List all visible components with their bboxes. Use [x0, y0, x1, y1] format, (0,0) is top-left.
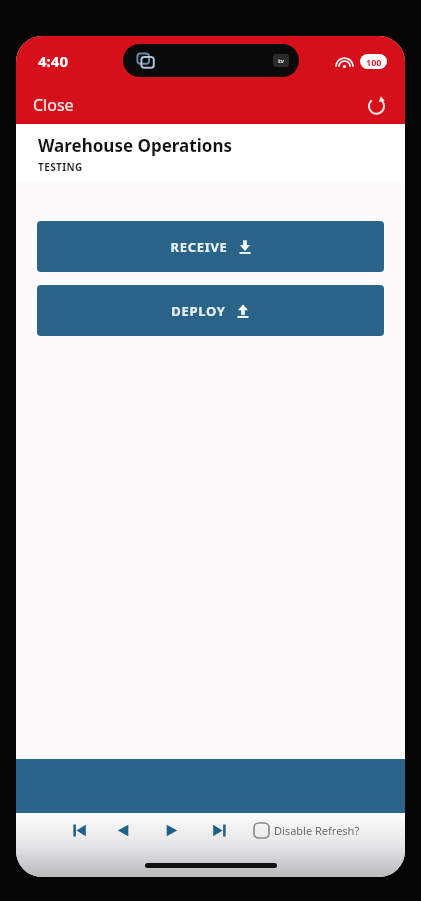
- staticText: Close: [33, 94, 74, 116]
- staticText: 100: [366, 56, 382, 68]
- button[interactable]: Refresh: [359, 88, 393, 122]
- button[interactable]: Last page: [208, 819, 230, 841]
- button[interactable]: Previous page: [112, 819, 134, 841]
- button[interactable]: DEPLOY: [37, 285, 384, 336]
- button[interactable]: Disable Refresh?: [254, 823, 360, 838]
- staticText: Warehouse Operations: [38, 134, 232, 157]
- button[interactable]: First page: [68, 819, 90, 841]
- staticText: tv: [278, 57, 285, 65]
- button[interactable]: Close: [16, 90, 86, 120]
- staticText: DEPLOY: [171, 302, 226, 320]
- staticText: Disable Refresh?: [274, 823, 360, 838]
- staticText: 4:40: [38, 51, 68, 71]
- button[interactable]: Next page: [160, 819, 182, 841]
- staticText: RECEIVE: [170, 238, 228, 256]
- staticText: TESTING: [38, 160, 83, 174]
- button[interactable]: RECEIVE: [37, 221, 384, 272]
